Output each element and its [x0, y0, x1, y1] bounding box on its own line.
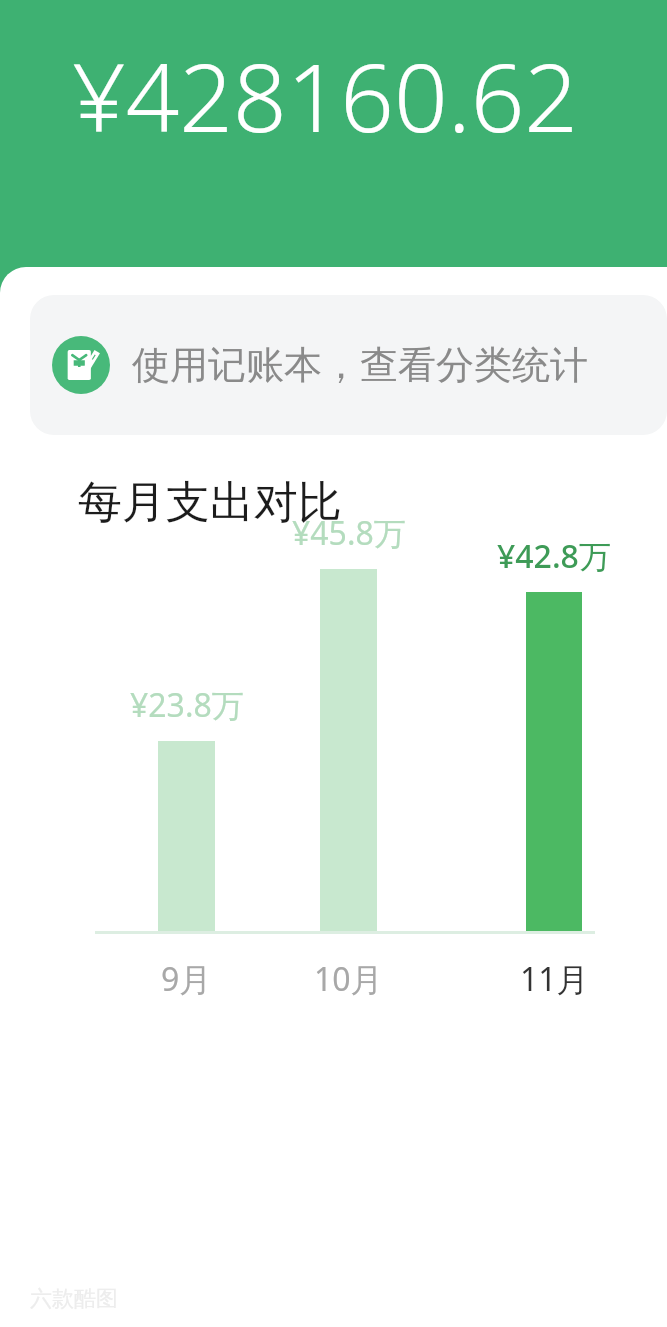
staticText: 10月: [314, 957, 383, 1001]
staticText: ¥42.8万: [497, 534, 611, 578]
staticText: ¥428160.62: [72, 32, 579, 160]
staticText: 11月: [520, 957, 589, 1001]
staticText: 每月支出对比: [78, 475, 342, 530]
staticText: 9月: [161, 957, 212, 1001]
staticText: ¥45.8万: [292, 511, 406, 555]
other: 使用记账本: [52, 336, 110, 394]
button[interactable]: 使用记账本: [30, 295, 667, 435]
staticText: 六款酷图: [30, 1285, 118, 1313]
staticText: 使用记账本，查看分类统计: [132, 341, 588, 389]
staticText: ¥23.8万: [130, 683, 244, 727]
